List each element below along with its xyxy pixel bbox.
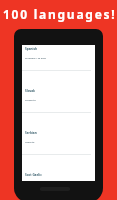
staticText: Lu'bim ta (25, 99, 36, 102)
button[interactable]: Scot Gaelic (22, 171, 95, 181)
staticText: Te quiero / Te amo (25, 57, 46, 60)
button[interactable]: Slovak (22, 87, 95, 129)
staticText: 100 languages! (3, 6, 117, 22)
button[interactable]: Serbian (22, 129, 95, 171)
staticText: Volim te (25, 141, 35, 144)
staticText: Spanish (25, 47, 38, 51)
staticText: Serbian (25, 131, 37, 135)
button[interactable]: Spanish (22, 45, 95, 87)
staticText: Scot Gaelic (25, 173, 42, 177)
staticText: Slovak (25, 89, 36, 93)
